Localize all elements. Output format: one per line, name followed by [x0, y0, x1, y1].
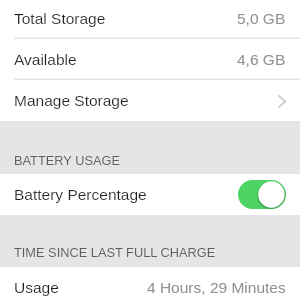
staticText: Available	[14, 51, 77, 68]
staticText: Total Storage	[14, 10, 106, 27]
button[interactable]: Available	[0, 39, 300, 80]
staticText: 4,6 GB	[237, 51, 286, 68]
button[interactable]: Battery Percentage	[0, 174, 300, 215]
staticText: 4 Hours, 29 Minutes	[147, 279, 286, 296]
other: Manage Storage	[278, 94, 286, 108]
button[interactable]: Battery Percentage	[238, 180, 286, 209]
staticText: TIME SINCE LAST FULL CHARGE	[14, 245, 216, 259]
staticText: Manage Storage	[14, 92, 129, 109]
staticText: Usage	[14, 279, 59, 296]
button[interactable]: Manage Storage	[0, 80, 300, 121]
button[interactable]: Usage	[0, 267, 300, 300]
staticText: BATTERY USAGE	[14, 153, 120, 167]
staticText: 5,0 GB	[237, 10, 286, 27]
staticText: Battery Percentage	[14, 186, 147, 203]
button[interactable]: Total Storage	[0, 0, 300, 39]
